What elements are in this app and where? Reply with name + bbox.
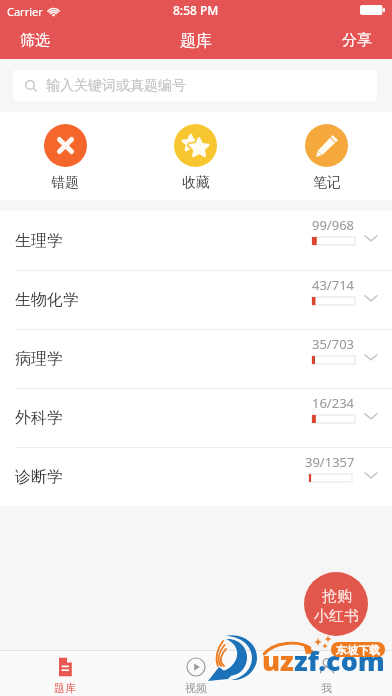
- button[interactable]: 筛选: [12, 25, 58, 56]
- staticText: 视频: [185, 681, 207, 695]
- staticText: 题库: [180, 31, 212, 51]
- staticText: 35/703: [312, 335, 355, 353]
- button[interactable]: 题库: [0, 651, 130, 696]
- button[interactable]: 分享: [334, 25, 380, 56]
- staticText: 东坡下载: [336, 643, 380, 657]
- staticText: 8:58 PM: [173, 2, 219, 18]
- staticText: 笔记: [313, 174, 341, 192]
- staticText: 16/234: [312, 394, 355, 412]
- button[interactable]: 外科学: [0, 388, 392, 447]
- staticText: 39/1357: [305, 453, 355, 471]
- button[interactable]: 输入关键词或真题编号: [13, 70, 377, 101]
- button[interactable]: 诊断学: [0, 447, 392, 506]
- staticText: zf.com: [294, 642, 385, 679]
- staticText: Carrier: [7, 4, 43, 19]
- button[interactable]: 生理学: [0, 211, 392, 270]
- button[interactable]: 视频: [130, 651, 261, 696]
- staticText: 收藏: [182, 174, 210, 192]
- staticText: 分享: [342, 31, 372, 50]
- button[interactable]: 收藏: [130, 112, 261, 200]
- staticText: 生理学: [15, 231, 63, 251]
- staticText: 外科学: [15, 408, 63, 428]
- staticText: 题库: [54, 681, 76, 695]
- button[interactable]: 错题: [0, 112, 130, 200]
- button[interactable]: 我: [261, 651, 392, 696]
- button[interactable]: 笔记: [261, 112, 392, 200]
- staticText: uz: [262, 642, 294, 679]
- staticText: 错题: [51, 174, 79, 192]
- staticText: 诊断学: [15, 467, 63, 487]
- button[interactable]: 生物化学: [0, 270, 392, 329]
- button[interactable]: 抢购: [304, 572, 368, 636]
- staticText: 99/968: [312, 216, 355, 234]
- staticText: 小红书: [314, 607, 359, 626]
- staticText: 生物化学: [15, 290, 79, 310]
- staticText: 我: [321, 681, 332, 695]
- staticText: 筛选: [20, 31, 50, 50]
- staticText: 43/714: [312, 276, 355, 294]
- staticText: 输入关键词或真题编号: [46, 77, 186, 95]
- button[interactable]: 病理学: [0, 329, 392, 388]
- staticText: 抢购: [322, 587, 352, 606]
- staticText: 病理学: [15, 349, 63, 369]
